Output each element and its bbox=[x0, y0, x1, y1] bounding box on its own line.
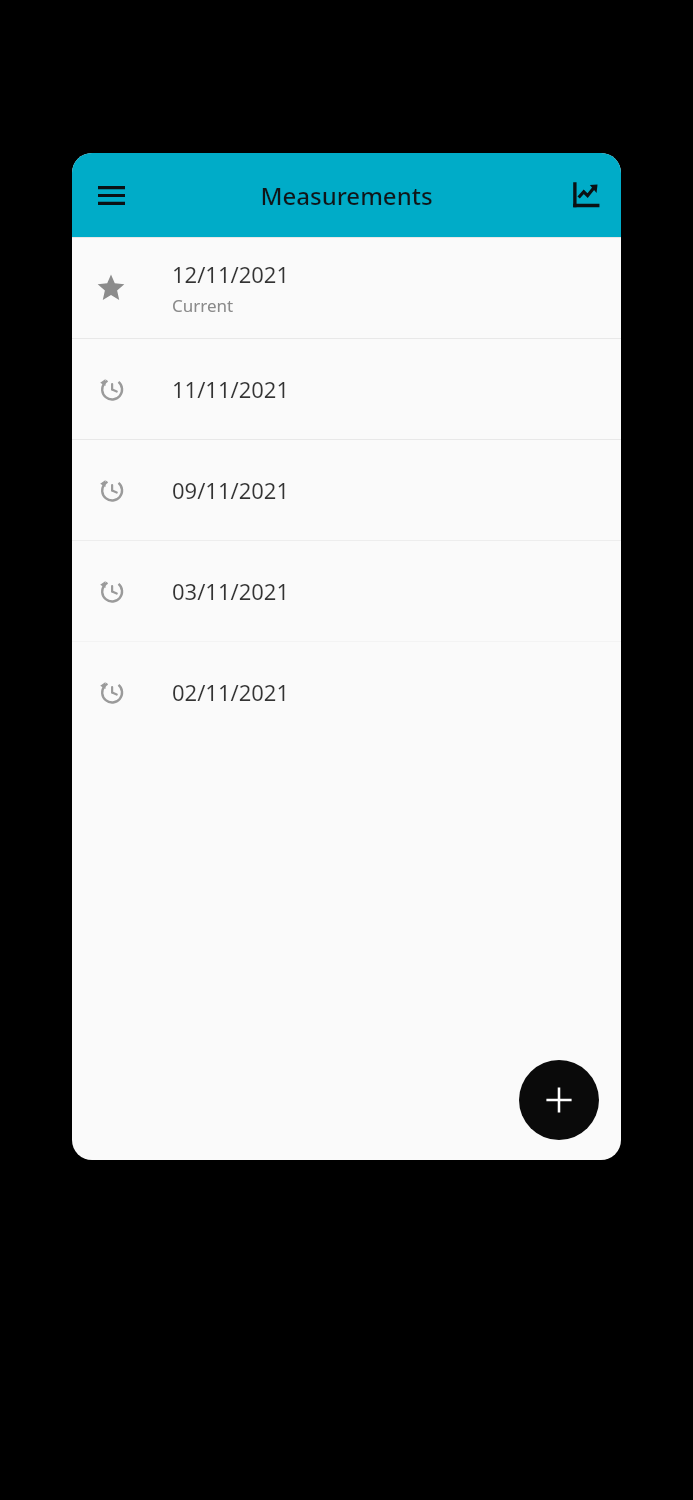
staticText: 02/11/2021 bbox=[172, 677, 290, 707]
button[interactable]: Open navigation menu bbox=[85, 169, 137, 221]
staticText: Current bbox=[172, 294, 234, 317]
button[interactable]: 02/11/2021 bbox=[72, 642, 621, 742]
staticText: 03/11/2021 bbox=[172, 576, 290, 606]
button[interactable]: 09/11/2021 bbox=[72, 440, 621, 540]
staticText: 11/11/2021 bbox=[172, 374, 290, 404]
staticText: 09/11/2021 bbox=[172, 475, 290, 505]
button[interactable]: 03/11/2021 bbox=[72, 541, 621, 641]
staticText: 12/11/2021 bbox=[172, 259, 290, 289]
button[interactable]: Add measurement bbox=[519, 1060, 599, 1140]
button[interactable]: Show chart bbox=[560, 169, 612, 221]
staticText: Measurements bbox=[260, 179, 433, 212]
button[interactable]: 11/11/2021 bbox=[72, 339, 621, 439]
button[interactable]: 12/11/2021 bbox=[72, 238, 621, 338]
